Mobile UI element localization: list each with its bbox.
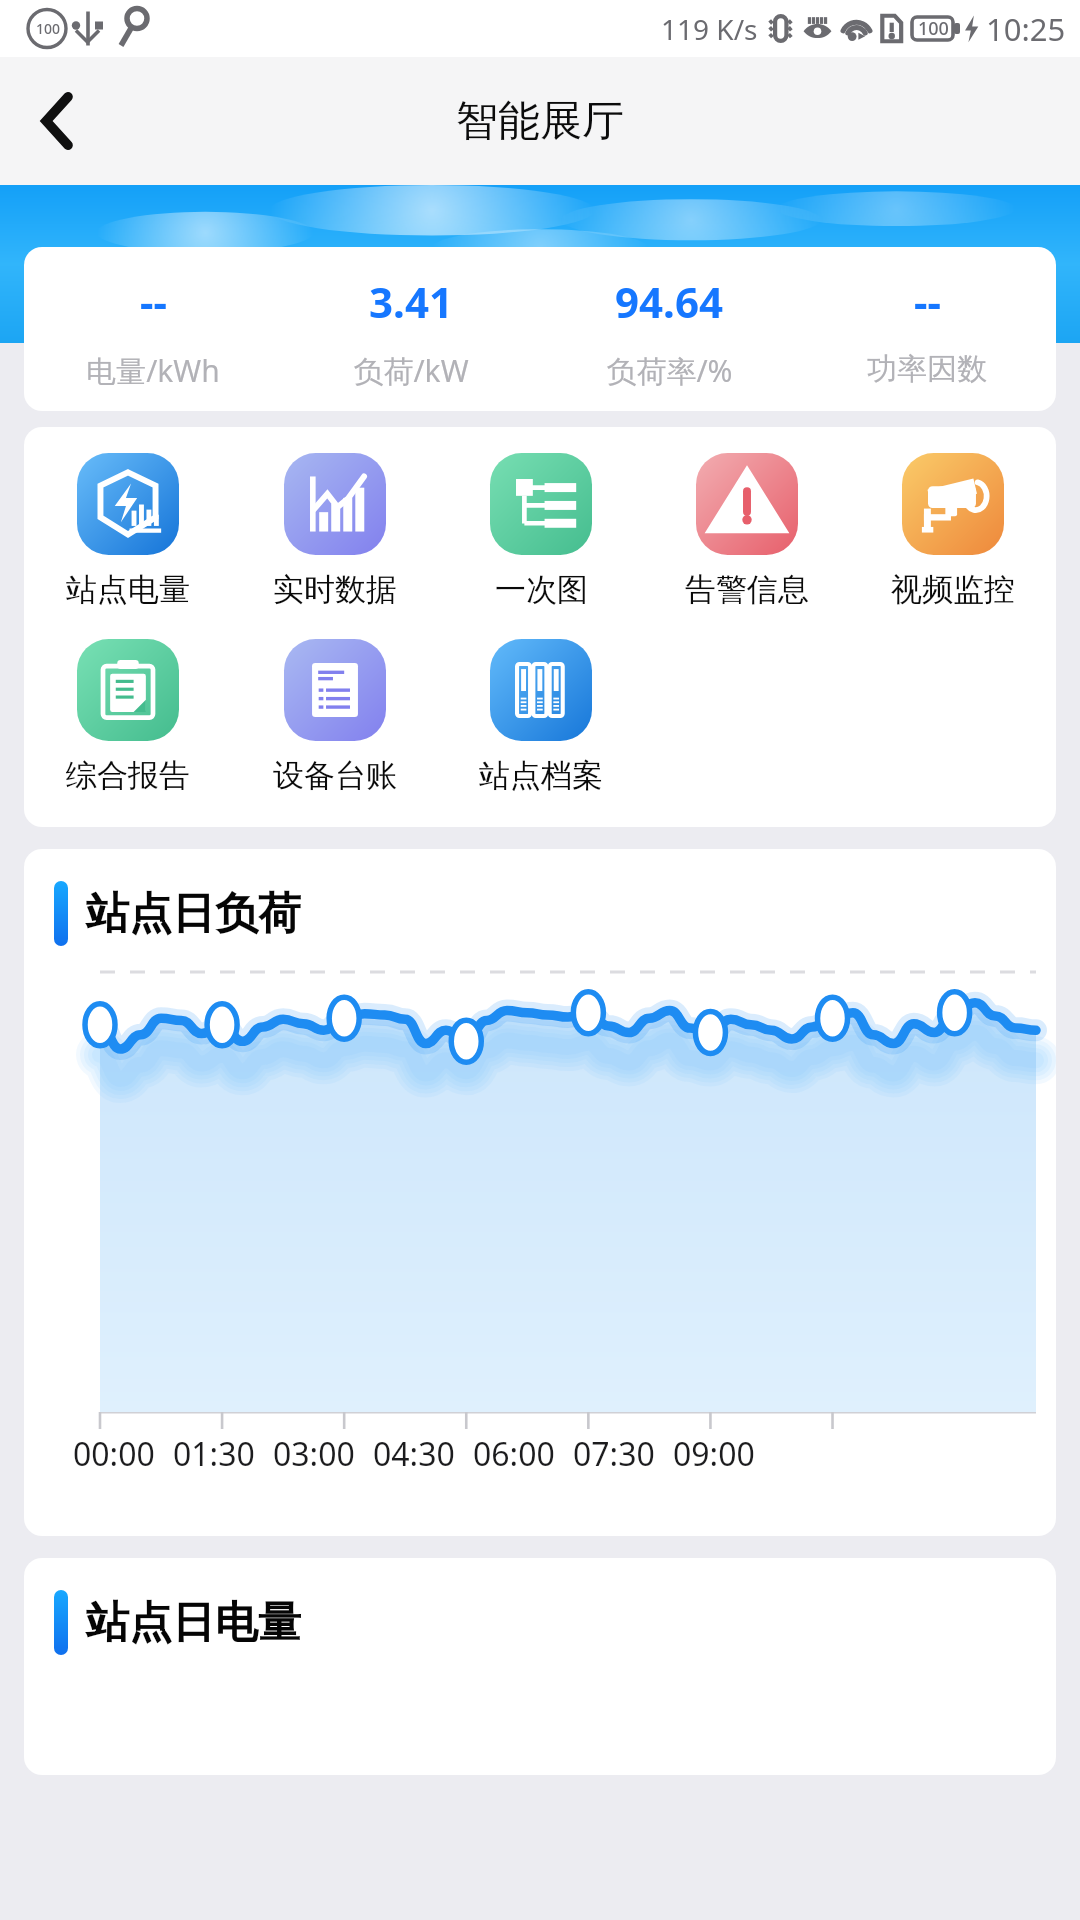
staticText: 01:30 xyxy=(173,1432,255,1476)
staticText: 09:00 xyxy=(673,1432,755,1476)
staticText: 10:25 xyxy=(986,8,1066,50)
button[interactable]: 设备台账 xyxy=(231,635,438,799)
staticText: 04:30 xyxy=(373,1432,455,1476)
staticText: 实时数据 xyxy=(273,570,397,609)
button[interactable]: 3.41 xyxy=(282,247,540,411)
staticText: 功率因数 xyxy=(867,350,987,388)
staticText: 站点档案 xyxy=(479,756,603,795)
staticText: 站点电量 xyxy=(66,570,190,609)
button[interactable]: 94.64 xyxy=(540,247,798,411)
staticText: -- xyxy=(140,273,167,330)
staticText: 站点日负荷 xyxy=(86,887,301,941)
staticText: 00:00 xyxy=(73,1432,155,1476)
staticText: 告警信息 xyxy=(685,570,809,609)
button[interactable]: 视频监控 xyxy=(850,449,1056,613)
staticText: 3.41 xyxy=(369,273,453,330)
staticText: 设备台账 xyxy=(273,756,397,795)
staticText: 06:00 xyxy=(473,1432,555,1476)
staticText: -- xyxy=(914,273,941,330)
button[interactable]: -- xyxy=(798,247,1056,411)
staticText: 智能展厅 xyxy=(456,95,624,148)
staticText: 119 K/s xyxy=(661,10,758,48)
staticText: 站点日电量 xyxy=(86,1596,301,1650)
staticText: 负荷/kW xyxy=(353,350,469,391)
button[interactable]: Back xyxy=(16,79,100,163)
button[interactable]: 站点档案 xyxy=(438,635,644,799)
button[interactable]: 告警信息 xyxy=(644,449,850,613)
staticText: 综合报告 xyxy=(66,756,190,795)
button[interactable]: 一次图 xyxy=(438,449,644,613)
staticText: 100 xyxy=(36,19,61,38)
staticText: 负荷率/% xyxy=(606,350,733,391)
staticText: 视频监控 xyxy=(891,570,1015,609)
button[interactable]: 实时数据 xyxy=(231,449,438,613)
button[interactable]: 站点电量 xyxy=(24,449,231,613)
button[interactable]: 综合报告 xyxy=(24,635,231,799)
staticText: 94.64 xyxy=(615,273,723,330)
staticText: 电量/kWh xyxy=(86,350,220,391)
staticText: 100 xyxy=(918,16,949,41)
staticText: 一次图 xyxy=(495,570,588,609)
staticText: 03:00 xyxy=(273,1432,355,1476)
button[interactable]: -- xyxy=(24,247,282,411)
staticText: 07:30 xyxy=(573,1432,655,1476)
